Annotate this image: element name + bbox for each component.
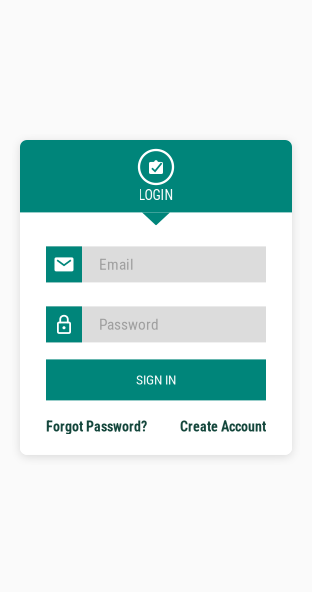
staticText: Forgot Password? — [46, 418, 147, 435]
button[interactable]: Password — [46, 306, 266, 342]
button[interactable]: Email — [46, 246, 266, 282]
staticText: LOGIN — [138, 187, 173, 203]
staticText: Email — [99, 255, 134, 273]
staticText: Create Account — [180, 418, 266, 435]
button[interactable]: SIGN IN — [46, 359, 266, 400]
staticText: SIGN IN — [136, 372, 176, 388]
button[interactable]: Forgot Password? — [46, 418, 147, 435]
button[interactable]: Create Account — [180, 418, 266, 435]
staticText: Password — [99, 315, 159, 333]
